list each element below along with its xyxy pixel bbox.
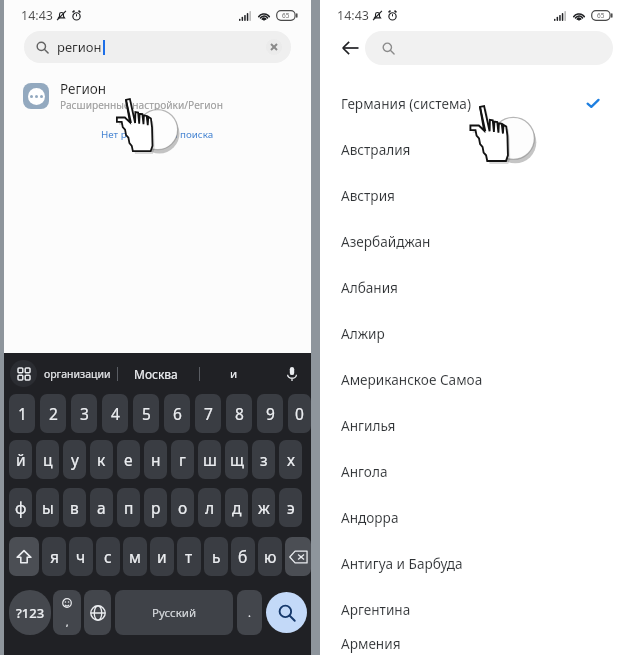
- button[interactable]: Регион: [4, 75, 311, 117]
- button[interactable]: Австралия: [320, 126, 626, 172]
- button[interactable]: 4: [102, 394, 128, 433]
- staticText: 9: [266, 403, 275, 424]
- button[interactable]: и: [230, 366, 238, 382]
- button[interactable]: д: [225, 488, 248, 527]
- button[interactable]: 5: [133, 394, 159, 433]
- button[interactable]: Армения: [320, 632, 626, 655]
- button[interactable]: Search: [266, 592, 307, 633]
- button[interactable]: х: [279, 440, 302, 479]
- button[interactable]: у: [63, 440, 86, 479]
- staticText: а: [97, 497, 106, 518]
- staticText: регион: [57, 38, 102, 56]
- button[interactable]: Азербайджан: [320, 218, 626, 264]
- button[interactable]: 6: [164, 394, 190, 433]
- button[interactable]: н: [144, 440, 167, 479]
- button[interactable]: организации: [44, 367, 111, 381]
- button[interactable]: Ангилья: [320, 402, 626, 448]
- button[interactable]: Ангола: [320, 448, 626, 494]
- staticText: е: [124, 449, 133, 470]
- button[interactable]: Алжир: [320, 310, 626, 356]
- button[interactable]: Back: [337, 35, 363, 61]
- button[interactable]: ф: [9, 488, 32, 527]
- button[interactable]: ?123: [9, 590, 51, 635]
- button[interactable]: щ: [225, 440, 248, 479]
- staticText: и: [230, 366, 238, 382]
- staticText: й: [16, 449, 26, 470]
- button[interactable]: й: [9, 440, 32, 479]
- button[interactable]: з: [252, 440, 275, 479]
- button[interactable]: Антигуа и Барбуда: [320, 540, 626, 586]
- button[interactable]: Shift: [9, 537, 39, 576]
- button[interactable]: 7: [195, 394, 221, 433]
- staticText: л: [205, 497, 215, 518]
- button[interactable]: 8: [226, 394, 252, 433]
- staticText: ?123: [16, 604, 45, 622]
- button[interactable]: к: [90, 440, 113, 479]
- button[interactable]: ц: [36, 440, 59, 479]
- button[interactable]: ю: [258, 537, 282, 576]
- staticText: Американское Самоа: [341, 370, 483, 389]
- staticText: щ: [230, 449, 244, 470]
- staticText: Антигуа и Барбуда: [341, 554, 463, 573]
- staticText: 0: [295, 403, 304, 424]
- button[interactable]: р: [144, 488, 167, 527]
- button[interactable]: Москва: [134, 366, 178, 382]
- button[interactable]: Германия (система): [320, 80, 626, 126]
- button[interactable]: Clear: [266, 39, 282, 55]
- button[interactable]: Change language: [84, 590, 111, 635]
- button[interactable]: м: [123, 537, 147, 576]
- button[interactable]: Австрия: [320, 172, 626, 218]
- staticText: 6: [173, 403, 182, 424]
- button[interactable]: о: [171, 488, 194, 527]
- button[interactable]: ь: [204, 537, 228, 576]
- button[interactable]: г: [171, 440, 194, 479]
- button[interactable]: .: [237, 590, 262, 635]
- button[interactable]: Нет результатов поиска: [101, 128, 214, 141]
- button[interactable]: 3: [71, 394, 97, 433]
- button[interactable]: а: [90, 488, 113, 527]
- button[interactable]: Аргентина: [320, 586, 626, 632]
- staticText: 65: [597, 11, 605, 20]
- button[interactable]: Backspace: [285, 537, 311, 576]
- button[interactable]: ы: [36, 488, 59, 527]
- button[interactable]: л: [198, 488, 221, 527]
- button[interactable]: Voice input: [281, 363, 303, 385]
- button[interactable]: Emoji: [53, 590, 81, 635]
- button[interactable]: ш: [198, 440, 221, 479]
- button[interactable]: Американское Самоа: [320, 356, 626, 402]
- button[interactable]: регион: [24, 31, 291, 63]
- staticText: б: [238, 546, 248, 567]
- button[interactable]: ж: [252, 488, 275, 527]
- staticText: ф: [15, 497, 27, 518]
- button[interactable]: э: [279, 488, 302, 527]
- staticText: Австралия: [341, 140, 411, 159]
- button[interactable]: 2: [40, 394, 66, 433]
- staticText: к: [97, 449, 106, 470]
- button[interactable]: 1: [9, 394, 35, 433]
- button[interactable]: ч: [69, 537, 93, 576]
- button[interactable]: с: [96, 537, 120, 576]
- button[interactable]: и: [150, 537, 174, 576]
- button[interactable]: в: [63, 488, 86, 527]
- button[interactable]: т: [177, 537, 201, 576]
- staticText: д: [232, 497, 242, 518]
- button[interactable]: 9: [257, 394, 283, 433]
- staticText: ь: [212, 546, 221, 567]
- button[interactable]: [365, 31, 613, 65]
- button[interactable]: б: [231, 537, 255, 576]
- button[interactable]: Apps: [10, 360, 37, 387]
- staticText: 4: [111, 403, 120, 424]
- staticText: Ангола: [341, 462, 388, 481]
- staticText: ,: [66, 616, 69, 628]
- button[interactable]: п: [117, 488, 140, 527]
- staticText: 2: [49, 403, 58, 424]
- staticText: 5: [142, 403, 151, 424]
- button[interactable]: 0: [288, 394, 311, 433]
- button[interactable]: я: [42, 537, 66, 576]
- button[interactable]: Албания: [320, 264, 626, 310]
- button[interactable]: Андорра: [320, 494, 626, 540]
- staticText: н: [151, 449, 161, 470]
- staticText: 65: [282, 11, 290, 20]
- button[interactable]: е: [117, 440, 140, 479]
- button[interactable]: Русский: [115, 590, 233, 635]
